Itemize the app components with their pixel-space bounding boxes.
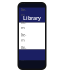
staticText: Item <box>21 19 26 30</box>
staticText: Item <box>21 32 26 43</box>
staticText: Item <box>21 7 26 17</box>
staticText: Item <box>21 45 26 55</box>
staticText: Library <box>23 14 41 22</box>
staticText: Item <box>21 0 26 5</box>
staticText: Item <box>21 57 26 68</box>
